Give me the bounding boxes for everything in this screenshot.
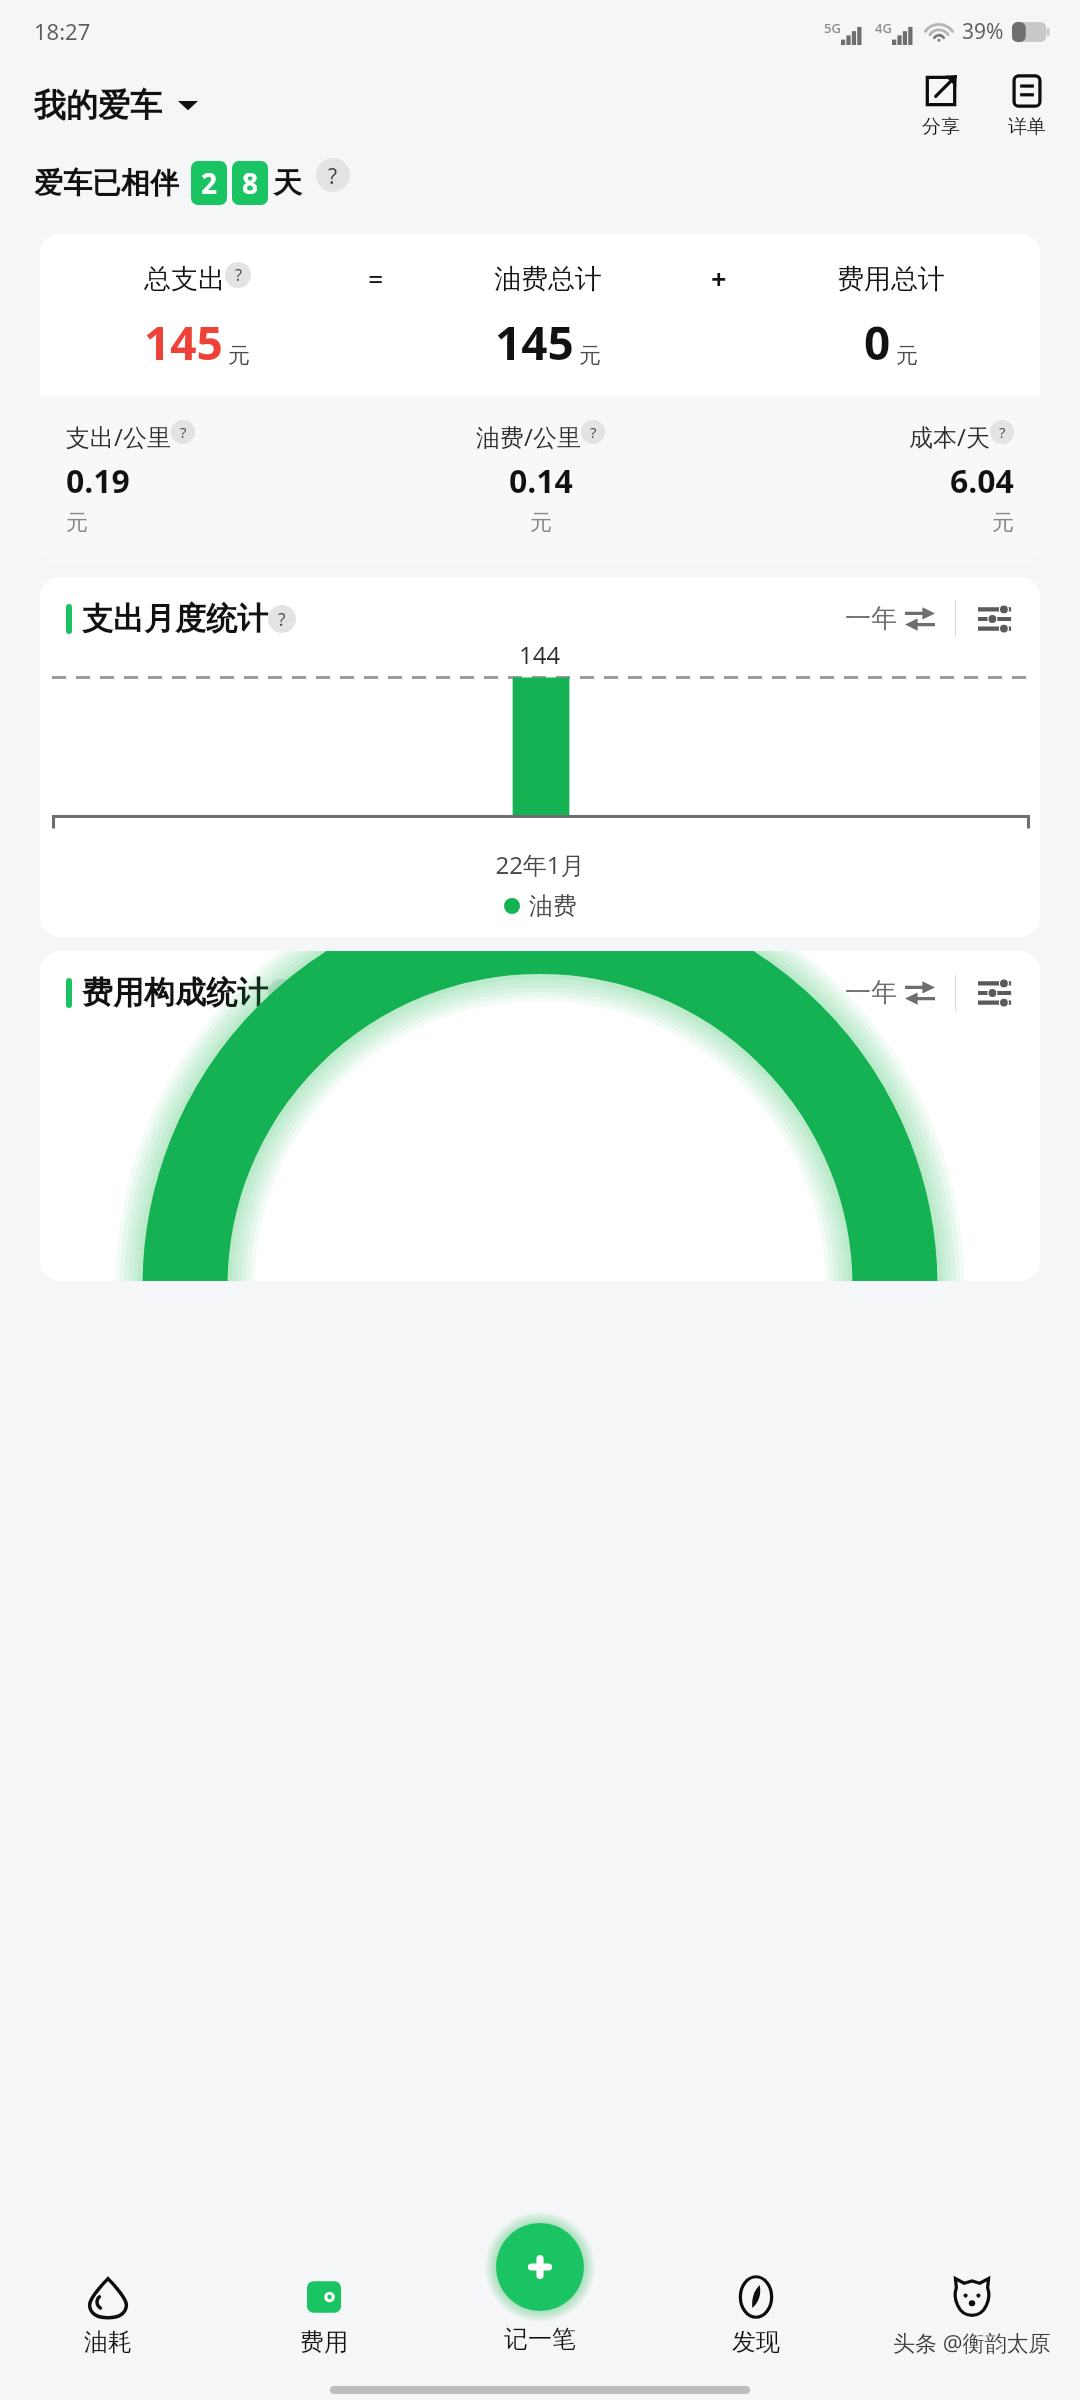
staticText: 元 — [228, 342, 250, 370]
staticText: 详单 — [1008, 115, 1046, 139]
staticText: 39% — [962, 17, 1004, 46]
other: 油耗 — [85, 2274, 131, 2320]
staticText: 6.04 — [950, 459, 1014, 503]
button[interactable]: 一年 — [845, 602, 935, 635]
button[interactable]: 我的 — [864, 2270, 1080, 2357]
staticText: 支出月度统计 — [82, 599, 268, 638]
button[interactable]: 筛选 — [978, 978, 1014, 1008]
staticText: ? — [180, 422, 187, 442]
button[interactable]: 说明 — [268, 979, 296, 1007]
button[interactable]: 说明 — [581, 420, 605, 444]
staticText: 记一笔 — [504, 2324, 576, 2354]
staticText: 油费 — [529, 891, 577, 921]
button[interactable]: 说明 — [268, 605, 296, 633]
other: 费用 — [301, 2274, 347, 2320]
staticText: 元 — [992, 509, 1014, 537]
other: 切换 — [905, 979, 935, 1007]
staticText: 18:27 — [34, 16, 91, 46]
staticText: 8 — [242, 164, 259, 202]
other: 切换 — [905, 605, 935, 633]
staticText: 元 — [66, 509, 88, 537]
button[interactable]: 成本/天 — [733, 420, 1014, 537]
staticText: 2 — [201, 164, 218, 202]
other: 我的 — [949, 2274, 995, 2320]
staticText: ? — [328, 161, 338, 190]
staticText: 一年 — [845, 602, 897, 635]
staticText: 费用 — [300, 2327, 348, 2357]
staticText: 5G — [824, 19, 841, 37]
staticText: 发现 — [732, 2327, 780, 2357]
staticText: 分享 — [922, 115, 960, 139]
button[interactable]: 一年 — [845, 976, 935, 1009]
staticText: = — [368, 260, 384, 297]
button[interactable]: 详单 — [1004, 72, 1050, 139]
staticText: 145 — [495, 311, 574, 374]
staticText: 油费/公里 — [476, 420, 581, 453]
staticText: ? — [278, 981, 286, 1005]
button[interactable]: 说明 — [171, 420, 195, 444]
staticText: ? — [999, 422, 1006, 442]
staticText: ? — [235, 264, 242, 286]
staticText: 爱车已相伴 — [34, 165, 179, 202]
staticText: 145 — [144, 311, 223, 374]
staticText: 一年 — [845, 976, 897, 1009]
staticText: 头条 @衡韵太原 — [893, 2327, 1051, 2357]
button[interactable]: 我的爱车 — [34, 85, 198, 125]
staticText: 总支出 — [144, 262, 225, 296]
button[interactable]: 油耗 — [0, 2270, 216, 2357]
staticText: 0 — [864, 311, 891, 374]
staticText: 费用总计 — [837, 262, 945, 296]
staticText: 油费总计 — [494, 262, 602, 296]
staticText: 成本/天 — [909, 420, 990, 453]
button[interactable]: 总支出 — [40, 234, 1040, 563]
staticText: 天 — [273, 165, 302, 202]
staticText: 144 — [519, 638, 561, 671]
button[interactable]: 分享 — [918, 72, 964, 139]
staticText: 费用构成统计 — [82, 973, 268, 1012]
staticText: ? — [590, 422, 597, 442]
staticText: 元 — [530, 509, 552, 537]
button[interactable]: 油费/公里 — [400, 420, 681, 537]
staticText: 22年1月 — [40, 848, 1040, 881]
other: 详单 — [1008, 72, 1046, 110]
button[interactable]: 记一笔 — [485, 2212, 595, 2322]
button[interactable]: 说明 — [316, 158, 350, 192]
staticText: ? — [278, 607, 286, 631]
button[interactable]: 支出/公里 — [66, 420, 348, 537]
staticText: 支出/公里 — [66, 420, 171, 453]
button[interactable]: 发现 — [648, 2270, 864, 2357]
staticText: 0.14 — [509, 459, 573, 503]
staticText: + — [711, 260, 727, 297]
staticText: 0.19 — [66, 459, 130, 503]
staticText: 油耗 — [84, 2327, 132, 2357]
other: 分享 — [922, 72, 960, 110]
button[interactable]: 费用 — [216, 2270, 432, 2357]
staticText: 元 — [579, 342, 601, 370]
button[interactable]: 说明 — [990, 420, 1014, 444]
other: 发现 — [733, 2274, 779, 2320]
button[interactable]: 筛选 — [978, 604, 1014, 634]
staticText: 元 — [896, 342, 918, 370]
staticText: 我的爱车 — [34, 85, 162, 125]
staticText: 4G — [875, 19, 892, 37]
button[interactable]: 说明 — [225, 262, 251, 288]
